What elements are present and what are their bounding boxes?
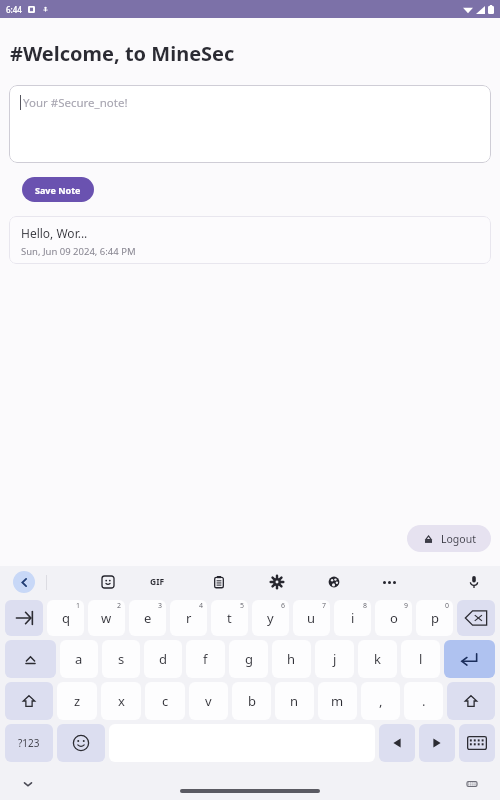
- staticText: b: [248, 692, 256, 710]
- staticText: 4: [199, 601, 204, 611]
- staticText: 2: [117, 601, 122, 611]
- staticText: 3: [158, 601, 163, 611]
- button[interactable]: Enter: [444, 640, 495, 678]
- staticText: Hello, Wor...: [21, 225, 88, 241]
- staticText: h: [287, 650, 296, 668]
- staticText: p: [431, 609, 439, 627]
- staticText: g: [245, 650, 253, 668]
- staticText: s: [118, 650, 125, 668]
- staticText: 8: [363, 601, 368, 611]
- button[interactable]: ,: [361, 682, 400, 720]
- staticText: Sun, Jun 09 2024, 6:44 PM: [21, 245, 136, 258]
- staticText: 6: [281, 601, 286, 611]
- staticText: 9: [404, 601, 409, 611]
- button[interactable]: n: [275, 682, 314, 720]
- button[interactable]: b: [232, 682, 271, 720]
- button[interactable]: l: [401, 640, 440, 678]
- button[interactable]: Hello, Wor...: [9, 216, 491, 264]
- staticText: r: [186, 609, 192, 627]
- button[interactable]: e: [129, 600, 166, 636]
- button[interactable]: Hide keyboard: [18, 774, 38, 794]
- staticText: 5: [240, 601, 245, 611]
- button[interactable]: Shift: [447, 682, 495, 720]
- button[interactable]: t: [211, 600, 248, 636]
- staticText: 0: [445, 601, 450, 611]
- button[interactable]: v: [189, 682, 228, 720]
- staticText: Your #Secure_note!: [23, 95, 128, 111]
- button[interactable]: d: [144, 640, 182, 678]
- staticText: u: [307, 609, 316, 627]
- button[interactable]: a: [60, 640, 98, 678]
- button[interactable]: Caps: [5, 640, 56, 678]
- button[interactable]: Your #Secure_note!: [9, 85, 491, 163]
- button[interactable]: Shift: [5, 682, 53, 720]
- button[interactable]: Tab: [5, 600, 43, 636]
- button[interactable]: ?123: [5, 724, 53, 762]
- button[interactable]: f: [186, 640, 225, 678]
- button[interactable]: Back: [13, 571, 35, 593]
- staticText: e: [144, 609, 152, 627]
- staticText: j: [333, 650, 337, 668]
- staticText: y: [267, 609, 274, 627]
- staticText: 6:44: [6, 4, 22, 15]
- button[interactable]: w: [88, 600, 125, 636]
- button[interactable]: Emoji: [57, 724, 105, 762]
- button[interactable]: Save Note: [22, 177, 94, 202]
- staticText: a: [75, 650, 83, 668]
- button[interactable]: m: [318, 682, 357, 720]
- button[interactable]: k: [358, 640, 397, 678]
- staticText: #Welcome, to MineSec: [10, 40, 235, 67]
- button[interactable]: y: [252, 600, 289, 636]
- button[interactable]: Keyboard: [459, 724, 495, 762]
- button[interactable]: Logout: [407, 525, 491, 552]
- staticText: i: [351, 609, 355, 627]
- staticText: 7: [322, 601, 327, 611]
- staticText: d: [159, 650, 167, 668]
- button[interactable]: h: [272, 640, 311, 678]
- staticText: Save Note: [35, 184, 81, 196]
- button[interactable]: Theme: [324, 572, 344, 592]
- button[interactable]: Voice input: [464, 572, 484, 592]
- other: Logout: [423, 534, 434, 545]
- staticText: c: [162, 692, 169, 710]
- staticText: w: [101, 609, 112, 627]
- button[interactable]: c: [145, 682, 185, 720]
- button[interactable]: o: [375, 600, 412, 636]
- staticText: Logout: [441, 532, 476, 546]
- button[interactable]: i: [334, 600, 371, 636]
- button[interactable]: Settings: [267, 572, 287, 592]
- staticText: .: [422, 692, 426, 710]
- staticText: x: [118, 692, 125, 710]
- button[interactable]: u: [293, 600, 330, 636]
- button[interactable]: z: [57, 682, 97, 720]
- button[interactable]: Clipboard: [209, 572, 229, 592]
- staticText: l: [419, 650, 423, 668]
- button[interactable]: Backspace: [457, 600, 495, 636]
- staticText: z: [74, 692, 81, 710]
- staticText: k: [374, 650, 381, 668]
- staticText: q: [62, 609, 70, 627]
- button[interactable]: p: [416, 600, 453, 636]
- staticText: t: [227, 609, 232, 627]
- staticText: f: [203, 650, 208, 668]
- staticText: m: [331, 692, 344, 710]
- staticText: ?123: [18, 736, 40, 750]
- button[interactable]: j: [315, 640, 354, 678]
- staticText: GIF: [150, 576, 165, 588]
- staticText: n: [290, 692, 299, 710]
- button[interactable]: Right: [419, 724, 455, 762]
- button[interactable]: Sticker: [98, 572, 118, 592]
- staticText: o: [390, 609, 398, 627]
- button[interactable]: g: [229, 640, 268, 678]
- button[interactable]: .: [404, 682, 443, 720]
- button[interactable]: s: [102, 640, 140, 678]
- button[interactable]: Switch keyboard: [462, 774, 482, 794]
- staticText: 1: [76, 601, 81, 611]
- button[interactable]: Left: [379, 724, 415, 762]
- staticText: ,: [379, 692, 383, 710]
- button[interactable]: q: [47, 600, 84, 636]
- button[interactable]: r: [170, 600, 207, 636]
- staticText: v: [205, 692, 212, 710]
- button[interactable]: x: [101, 682, 141, 720]
